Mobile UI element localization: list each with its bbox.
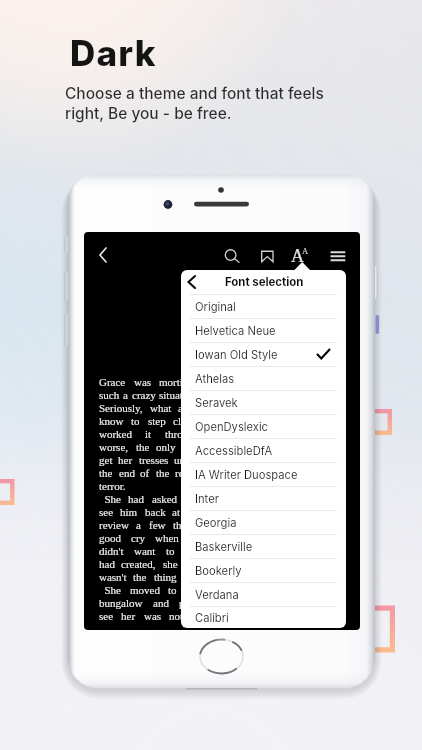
staticText: and xyxy=(153,597,169,609)
staticText: Grace xyxy=(99,376,126,388)
staticText: see xyxy=(99,610,114,622)
staticText: him xyxy=(120,506,138,518)
staticText: all xyxy=(189,532,200,544)
staticText: Helvetica Neue xyxy=(195,324,276,338)
staticText: when xyxy=(155,532,179,544)
staticText: to xyxy=(166,545,175,557)
staticText: at xyxy=(172,506,180,518)
staticText: didn't xyxy=(99,545,124,557)
staticText: cry xyxy=(131,532,146,544)
staticText: Georgia xyxy=(195,516,237,530)
button[interactable]: Seravek xyxy=(181,390,346,414)
button[interactable]: Calibri xyxy=(181,606,346,628)
button[interactable]: AccessibleDfA xyxy=(181,438,346,462)
staticText: terror. xyxy=(99,480,126,492)
staticText: Verdana xyxy=(195,588,239,602)
button[interactable]: Bookerly xyxy=(181,558,346,582)
staticText: Calibri xyxy=(195,611,229,625)
button[interactable]: Georgia xyxy=(181,510,346,534)
staticText: step xyxy=(148,415,166,427)
staticText: her xyxy=(185,493,200,505)
staticText: tresses xyxy=(139,454,169,466)
staticText: her xyxy=(118,454,133,466)
staticText: such xyxy=(99,389,120,401)
staticText: worked xyxy=(99,428,132,440)
button[interactable]: Inter xyxy=(181,486,346,510)
staticText: had xyxy=(128,493,144,505)
staticText: situation. xyxy=(159,389,200,401)
staticText: back xyxy=(145,506,166,518)
button[interactable]: Font selection xyxy=(181,270,346,294)
staticText: it xyxy=(145,428,152,440)
staticText: the xyxy=(133,571,147,583)
button[interactable]: Helvetica Neue xyxy=(181,318,346,342)
staticText: was xyxy=(144,610,162,622)
staticText: see xyxy=(185,545,200,557)
staticText: IA Writer Duospace xyxy=(195,468,298,482)
staticText: Baskerville xyxy=(195,540,253,554)
staticText: Inter xyxy=(195,492,219,506)
staticText: she xyxy=(163,558,178,570)
staticText: few xyxy=(149,519,166,531)
staticText: Dark xyxy=(70,32,157,74)
staticText: Seriously, xyxy=(99,402,143,414)
staticText: OpenDyslexic xyxy=(195,420,268,434)
staticText: Original xyxy=(195,300,236,314)
button[interactable]: OpenDyslexic xyxy=(181,414,346,438)
staticText: mortified xyxy=(159,376,200,388)
staticText: had xyxy=(99,558,115,570)
staticText: adult xyxy=(178,402,200,414)
button[interactable]: Menu xyxy=(324,243,346,265)
button[interactable]: Athelas xyxy=(181,366,346,390)
button[interactable]: Baskerville xyxy=(181,534,346,558)
staticText: asked xyxy=(152,493,178,505)
staticText: not xyxy=(169,610,184,622)
staticText: She xyxy=(99,493,121,505)
staticText: real xyxy=(183,441,200,453)
staticText: the xyxy=(186,506,200,518)
staticText: to xyxy=(131,415,140,427)
button[interactable]: Bookmark xyxy=(254,243,276,265)
staticText: moved xyxy=(130,584,160,596)
button[interactable]: Iowan Old Style xyxy=(181,342,346,366)
staticText: AccessibleDfA xyxy=(195,444,273,458)
staticText: closer xyxy=(173,415,200,427)
staticText: the xyxy=(99,467,113,479)
staticText: to xyxy=(168,584,177,596)
staticText: a xyxy=(123,389,128,401)
staticText: Font selection xyxy=(225,275,304,289)
staticText: things xyxy=(173,519,200,531)
staticText: worse, xyxy=(99,441,129,453)
staticText: Bookerly xyxy=(195,564,242,578)
button[interactable]: Verdana xyxy=(181,582,346,606)
staticText: to xyxy=(191,610,200,622)
staticText: know xyxy=(99,415,124,427)
staticText: only xyxy=(156,441,176,453)
staticText: a xyxy=(136,519,141,531)
staticText: Choose a theme and font that feels right… xyxy=(65,84,324,122)
button[interactable]: Original xyxy=(181,294,346,318)
staticText: Iowan Old Style xyxy=(195,348,278,362)
staticText: end xyxy=(119,467,135,479)
staticText: had xyxy=(184,558,200,570)
staticText: her xyxy=(121,610,136,622)
button[interactable]: Back xyxy=(183,273,201,291)
button[interactable]: Font size xyxy=(287,240,315,268)
staticText: want xyxy=(134,545,156,557)
button[interactable]: IA Writer Duospace xyxy=(181,462,346,486)
staticText: the xyxy=(186,584,200,596)
staticText: thing xyxy=(154,571,177,583)
staticText: Seravek xyxy=(195,396,238,410)
staticText: created, xyxy=(121,558,156,570)
staticText: A xyxy=(291,246,304,266)
staticText: through xyxy=(165,428,200,440)
button[interactable]: Search xyxy=(218,243,240,265)
staticText: review xyxy=(99,519,129,531)
staticText: the xyxy=(136,441,150,453)
staticText: prod xyxy=(179,597,200,609)
staticText: under xyxy=(174,454,200,466)
staticText: the xyxy=(156,467,170,479)
staticText: what xyxy=(150,402,172,414)
staticText: get xyxy=(99,454,113,466)
button[interactable]: Back xyxy=(92,241,116,265)
